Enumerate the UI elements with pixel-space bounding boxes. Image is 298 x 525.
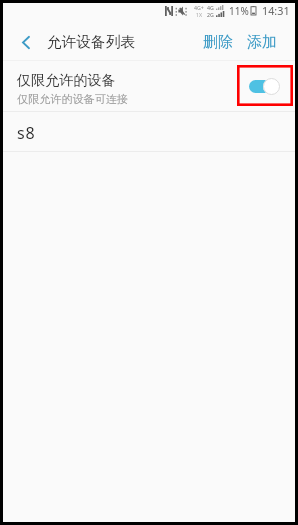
staticText: 添加 (247, 33, 277, 52)
staticText: 1X (196, 11, 203, 18)
staticText: 仅限允许的设备 (17, 71, 116, 89)
button[interactable]: 仅限允许的设备 (3, 61, 295, 111)
staticText: 11% (229, 4, 249, 18)
staticText: s8 (17, 122, 36, 144)
button[interactable]: Back (3, 24, 47, 60)
staticText: 4G+ (194, 4, 204, 11)
staticText: 允许设备列表 (47, 33, 136, 52)
button[interactable]: s8 (3, 112, 295, 151)
staticText: 4G (207, 4, 214, 11)
staticText: 仅限允许的设备可连接 (17, 92, 128, 106)
staticText: 删除 (203, 33, 233, 52)
button[interactable]: 删除 (198, 25, 238, 60)
staticText: 2G (207, 11, 214, 18)
button[interactable]: 添加 (242, 25, 295, 60)
staticText: 14:31 (262, 3, 290, 18)
